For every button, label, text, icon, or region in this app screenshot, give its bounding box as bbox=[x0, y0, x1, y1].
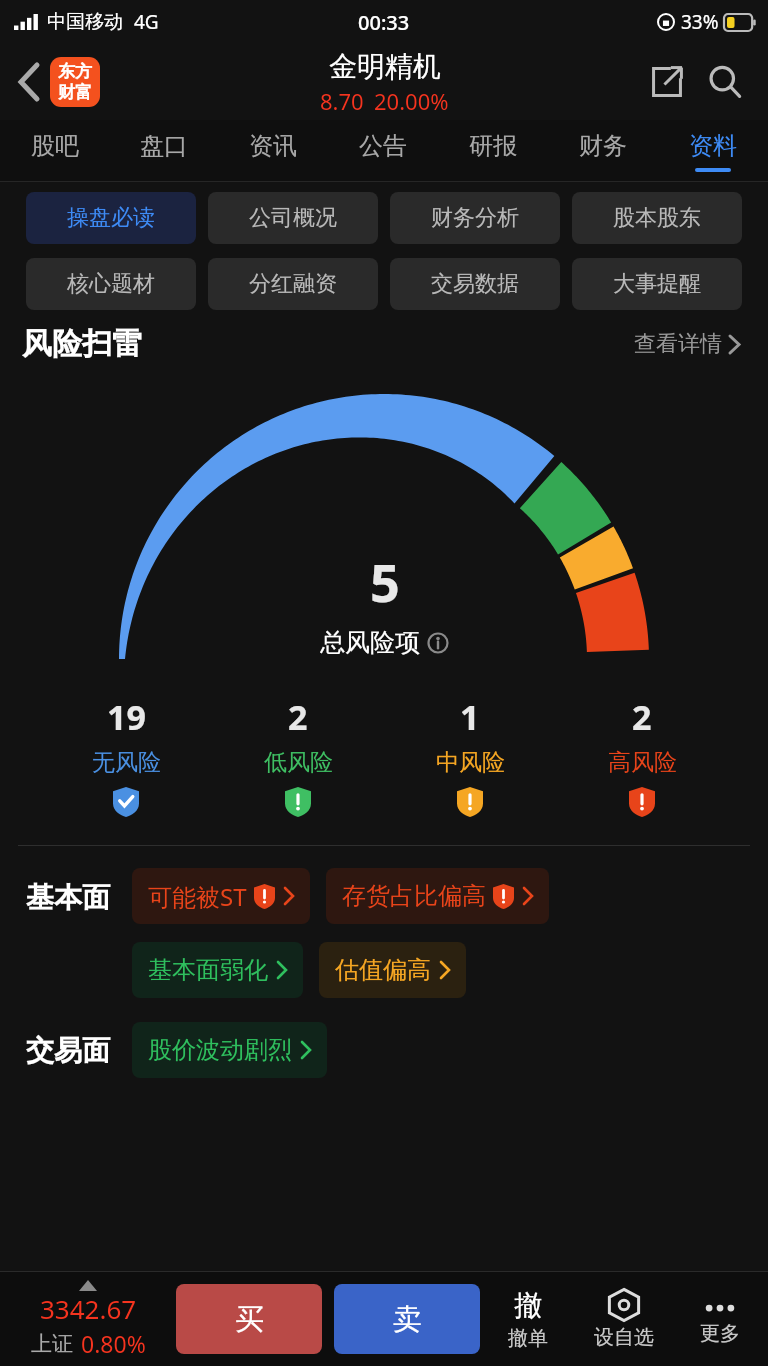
staticText: 买 bbox=[235, 1301, 264, 1338]
staticText: 金明精机 bbox=[329, 49, 441, 84]
staticText: 公司概况 bbox=[249, 204, 337, 232]
staticText: 存货占比偏高 bbox=[342, 881, 486, 911]
staticText: 交易面 bbox=[26, 1033, 110, 1068]
button[interactable]: 财务分析 bbox=[390, 192, 560, 244]
button[interactable]: 搜索 bbox=[702, 59, 748, 105]
button[interactable]: 设自选 bbox=[576, 1288, 672, 1350]
staticText: 19 bbox=[107, 694, 146, 740]
staticText: 无风险 bbox=[92, 748, 161, 777]
staticText: 财务 bbox=[579, 131, 627, 161]
button[interactable]: 公司概况 bbox=[208, 192, 378, 244]
button[interactable]: 19 bbox=[40, 694, 212, 817]
button[interactable]: 查看详情 bbox=[628, 324, 746, 364]
staticText: 股本股东 bbox=[613, 204, 701, 232]
staticText: 操盘必读 bbox=[67, 204, 155, 232]
staticText: 交易数据 bbox=[431, 270, 519, 298]
staticText: 5 bbox=[370, 546, 400, 617]
staticText: 00:33 bbox=[358, 9, 410, 36]
button[interactable]: 研报 bbox=[438, 120, 548, 182]
staticText: 股吧 bbox=[31, 131, 79, 161]
staticText: 卖 bbox=[393, 1301, 422, 1338]
staticText: 财富 bbox=[58, 82, 92, 103]
staticText: 3342.67 bbox=[40, 1291, 137, 1326]
staticText: 低风险 bbox=[264, 748, 333, 777]
button[interactable]: 股吧 bbox=[0, 120, 109, 182]
button[interactable]: 公告 bbox=[328, 120, 438, 182]
button[interactable]: 基本面弱化 bbox=[132, 942, 303, 998]
button[interactable]: 卖 bbox=[334, 1284, 480, 1354]
button[interactable]: 盘口 bbox=[109, 120, 218, 182]
staticText: 股价波动剧烈 bbox=[148, 1035, 292, 1065]
button[interactable]: 分享 bbox=[644, 59, 690, 105]
staticText: 总风险项 bbox=[320, 627, 420, 658]
staticText: 上证 bbox=[31, 1331, 73, 1357]
staticText: 中风险 bbox=[436, 748, 505, 777]
button[interactable]: 更多 bbox=[672, 1292, 768, 1346]
button[interactable]: 资料 bbox=[658, 120, 768, 182]
button[interactable]: 3342.67 bbox=[0, 1280, 176, 1359]
staticText: 1 bbox=[460, 694, 480, 740]
staticText: 2 bbox=[632, 694, 652, 740]
staticText: 撤 bbox=[514, 1288, 542, 1323]
staticText: 盘口 bbox=[140, 131, 188, 161]
staticText: 公告 bbox=[359, 131, 407, 161]
button[interactable]: 存货占比偏高 bbox=[326, 868, 549, 924]
staticText: 可能被ST bbox=[148, 880, 247, 913]
button[interactable]: 股本股东 bbox=[572, 192, 742, 244]
button[interactable]: 2 bbox=[556, 694, 728, 817]
staticText: 研报 bbox=[469, 131, 517, 161]
staticText: 东方 bbox=[58, 61, 92, 82]
button[interactable]: 买 bbox=[176, 1284, 322, 1354]
button[interactable]: 交易数据 bbox=[390, 258, 560, 310]
staticText: 基本面 bbox=[26, 880, 110, 915]
staticText: 查看详情 bbox=[634, 330, 722, 358]
staticText: 中国移动 bbox=[47, 10, 123, 34]
button[interactable]: 估值偏高 bbox=[319, 942, 466, 998]
staticText: 资讯 bbox=[249, 131, 297, 161]
staticText: 估值偏高 bbox=[335, 955, 431, 985]
staticText: 分红融资 bbox=[249, 270, 337, 298]
button[interactable]: 2 bbox=[212, 694, 384, 817]
staticText: 33% bbox=[681, 9, 719, 35]
button[interactable]: 操盘必读 bbox=[26, 192, 196, 244]
button[interactable]: 资讯 bbox=[218, 120, 328, 182]
staticText: 0.80% bbox=[81, 1328, 146, 1359]
staticText: 大事提醒 bbox=[613, 270, 701, 298]
staticText: 4G bbox=[134, 9, 159, 35]
staticText: 风险扫雷 bbox=[22, 325, 142, 363]
button[interactable]: 财务 bbox=[548, 120, 658, 182]
button[interactable]: 1 bbox=[384, 694, 556, 817]
staticText: 撤单 bbox=[508, 1326, 548, 1351]
button[interactable]: 核心题材 bbox=[26, 258, 196, 310]
button[interactable]: 股价波动剧烈 bbox=[132, 1022, 327, 1078]
button[interactable]: 大事提醒 bbox=[572, 258, 742, 310]
button[interactable]: 分红融资 bbox=[208, 258, 378, 310]
button[interactable]: 撤 bbox=[480, 1288, 576, 1351]
staticText: 资料 bbox=[689, 131, 737, 161]
staticText: 设自选 bbox=[594, 1325, 654, 1350]
staticText: 20.00% bbox=[374, 86, 449, 116]
staticText: 基本面弱化 bbox=[148, 955, 268, 985]
staticText: 财务分析 bbox=[431, 204, 519, 232]
staticText: 高风险 bbox=[608, 748, 677, 777]
button[interactable]: 可能被ST bbox=[132, 868, 310, 924]
staticText: 核心题材 bbox=[67, 270, 155, 298]
staticText: 8.70 bbox=[320, 86, 364, 116]
staticText: 2 bbox=[288, 694, 308, 740]
button[interactable]: 返回 bbox=[16, 51, 104, 113]
staticText: 更多 bbox=[700, 1321, 740, 1346]
